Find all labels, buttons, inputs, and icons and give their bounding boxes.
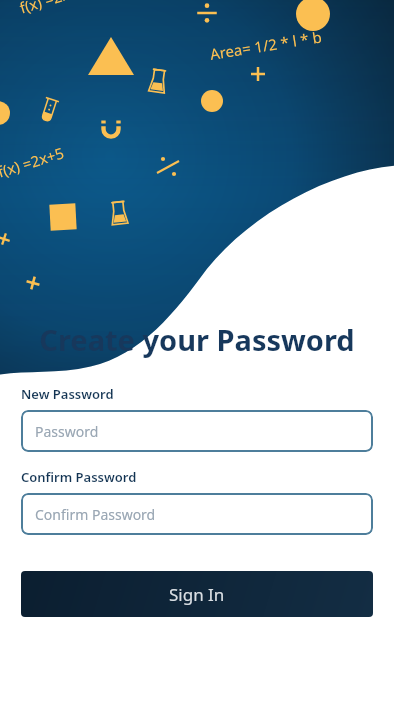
button[interactable]: Sign In	[21, 571, 373, 617]
button[interactable]: New Password	[21, 410, 373, 452]
staticText: Sign In	[169, 583, 225, 606]
staticText: Password	[35, 422, 99, 441]
staticText: f(x) =2x+5	[20, 0, 89, 18]
staticText: New Password	[21, 385, 114, 403]
staticText: Confirm Password	[21, 468, 137, 486]
staticText: Create your Password	[21, 320, 373, 359]
button[interactable]: Confirm Password	[21, 493, 373, 535]
staticText: Area= 1/2 * l * b	[210, 44, 323, 64]
staticText: Confirm Password	[35, 505, 156, 524]
staticText: f(x) =2x+5	[0, 162, 67, 182]
